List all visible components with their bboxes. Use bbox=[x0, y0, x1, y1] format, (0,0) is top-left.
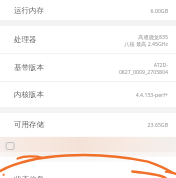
staticText: 状态信息 bbox=[14, 175, 44, 178]
button[interactable]: 运行内存 bbox=[0, 0, 176, 20]
staticText: 23.65GB bbox=[147, 121, 168, 128]
staticText: 高通骁龙835 bbox=[138, 33, 168, 40]
staticText: 八核 最高 2.45GHz bbox=[124, 40, 168, 47]
staticText: 0827_0009_2705804 bbox=[118, 68, 168, 75]
staticText: 可用存储 bbox=[14, 120, 44, 129]
button[interactable]: 状态信息 bbox=[0, 173, 176, 178]
staticText: 运行内存 bbox=[14, 6, 44, 15]
staticText: AT2D- bbox=[153, 61, 168, 68]
button[interactable]: 可用存储 bbox=[0, 113, 176, 135]
staticText: 内核版本 bbox=[14, 90, 44, 99]
staticText: 4.4.153-perf+ bbox=[135, 91, 168, 98]
other: Decoration bbox=[130, 173, 176, 178]
button[interactable]: 处理器 bbox=[0, 26, 176, 53]
staticText: 处理器 bbox=[14, 35, 37, 44]
button[interactable]: 内核版本 bbox=[0, 82, 176, 107]
staticText: 基带版本 bbox=[14, 63, 44, 72]
button[interactable]: 基带版本 bbox=[0, 54, 176, 81]
staticText: 6.00GB bbox=[150, 7, 168, 14]
